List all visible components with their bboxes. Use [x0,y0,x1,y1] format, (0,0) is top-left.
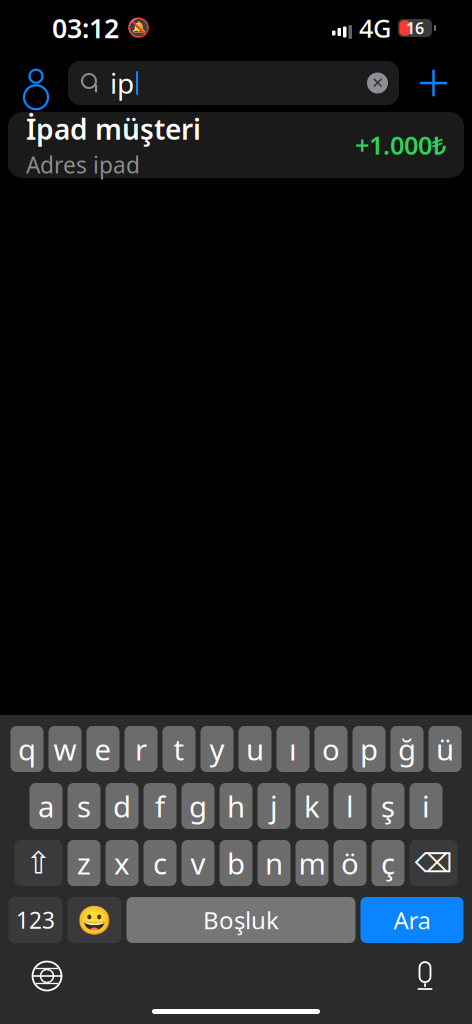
button[interactable]: İpad müşteri [8,112,464,178]
staticText: x [114,843,130,882]
button[interactable]: ç [371,840,404,886]
staticText: j [270,786,278,825]
button[interactable]: e [86,726,119,772]
staticText: z [77,843,91,882]
button[interactable]: Ekle [399,59,468,107]
button[interactable]: r [124,726,157,772]
staticText: ö [341,843,359,882]
staticText: s [77,786,91,825]
staticText: r [135,729,147,768]
staticText: o [322,729,340,768]
button[interactable]: ip [68,61,399,105]
button[interactable]: ü [428,726,461,772]
staticText: 😀 [77,904,112,936]
staticText: ü [436,729,454,768]
button[interactable]: z [67,840,100,886]
button[interactable]: Sil [409,840,457,886]
staticText: ⇧ [25,846,51,880]
button[interactable]: p [352,726,385,772]
staticText: f [155,786,165,825]
staticText: Boşluk [203,904,279,936]
button[interactable]: ı [276,726,309,772]
staticText: Ara [393,904,430,936]
staticText: m [298,843,325,882]
staticText: n [265,843,283,882]
staticText: 🔕 [127,17,150,39]
staticText: i [422,786,430,825]
staticText: b [227,843,245,882]
staticText: v [190,843,205,882]
staticText: 16 [406,17,424,39]
button[interactable]: s [67,783,100,829]
staticText: p [360,729,378,768]
staticText: u [246,729,264,768]
button[interactable]: d [105,783,138,829]
staticText: İpad müşteri [26,110,201,148]
button[interactable]: l [333,783,366,829]
staticText: ş [381,786,395,825]
staticText: e [94,729,111,768]
button[interactable]: w [48,726,81,772]
button[interactable]: y [200,726,233,772]
button[interactable]: o [314,726,347,772]
button[interactable]: a [29,783,62,829]
staticText: 4G [359,11,391,45]
button[interactable]: Boşluk [126,897,355,943]
button[interactable]: ğ [390,726,423,772]
button[interactable]: Ara [360,897,463,943]
button[interactable]: ş [371,783,404,829]
staticText: ğ [398,729,416,768]
button[interactable]: Büyük harf [14,840,62,886]
button[interactable]: Emoji [67,897,121,943]
staticText: k [304,786,320,825]
button[interactable]: x [105,840,138,886]
button[interactable]: ö [333,840,366,886]
button[interactable]: n [257,840,290,886]
staticText: 03:12 [52,10,119,46]
staticText: h [227,786,245,825]
button[interactable]: h [219,783,252,829]
staticText: w [53,729,76,768]
button[interactable]: Dikte [402,954,448,998]
button[interactable]: c [143,840,176,886]
button[interactable]: k [295,783,328,829]
button[interactable]: g [181,783,214,829]
staticText: Adres ipad [26,149,140,180]
staticText: g [189,786,207,825]
staticText: d [113,786,131,825]
button[interactable]: i [409,783,442,829]
staticText: a [38,786,54,825]
button[interactable]: b [219,840,252,886]
staticText: ı [289,729,297,768]
button[interactable]: f [143,783,176,829]
staticText: t [173,729,184,768]
staticText: y [209,729,224,768]
staticText: ⌫ [414,848,452,878]
staticText: l [346,786,354,825]
staticText: ç [381,843,395,882]
staticText: q [18,729,36,768]
staticText: ✕ [371,75,383,91]
button[interactable]: v [181,840,214,886]
button[interactable]: u [238,726,271,772]
button[interactable]: Hesap [4,59,68,107]
staticText: c [153,843,167,882]
staticText: ip [110,64,134,102]
staticText: 123 [16,905,55,935]
button[interactable]: t [162,726,195,772]
staticText: +1.000₺ [355,128,446,162]
button[interactable]: Klavye dili [24,954,70,998]
button[interactable]: m [295,840,328,886]
button[interactable]: q [10,726,43,772]
button[interactable]: j [257,783,290,829]
button[interactable]: 123 [8,897,62,943]
